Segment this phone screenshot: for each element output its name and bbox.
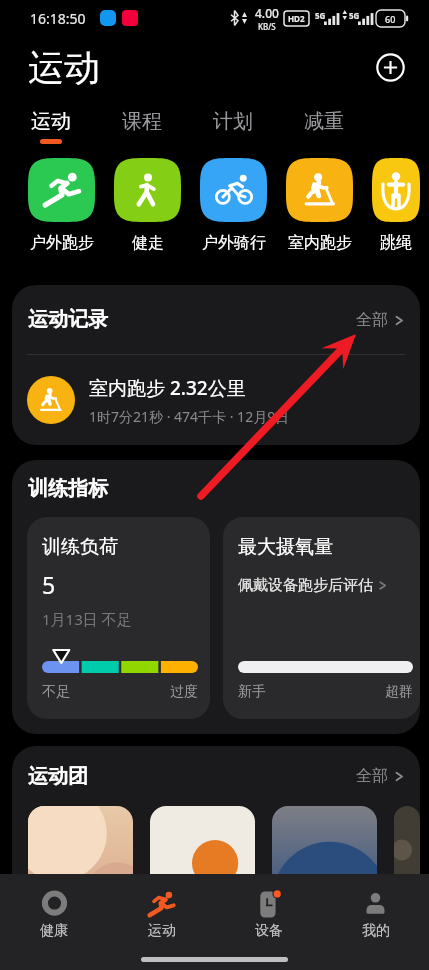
button[interactable]: 室内跑步 2.32公里 bbox=[27, 355, 405, 445]
staticText: 计划 bbox=[213, 109, 253, 134]
button[interactable]: 户外跑步 bbox=[28, 158, 95, 253]
staticText: 不足 bbox=[42, 683, 70, 701]
button[interactable]: 运动 bbox=[23, 98, 114, 145]
staticText: 过度 bbox=[170, 683, 198, 701]
staticText: 最大摄氧量 bbox=[238, 535, 333, 559]
staticText: 健康 bbox=[40, 922, 68, 940]
button[interactable]: 最大摄氧量 bbox=[223, 517, 420, 719]
staticText: 全部 bbox=[356, 766, 388, 786]
staticText: 60 bbox=[385, 13, 396, 25]
button[interactable]: 全部 bbox=[356, 306, 404, 334]
button[interactable]: 我的 bbox=[322, 874, 429, 970]
button[interactable]: 计划 bbox=[205, 98, 296, 145]
staticText: 5G bbox=[315, 10, 326, 21]
staticText: 运动 bbox=[148, 922, 176, 940]
staticText: 减重 bbox=[304, 109, 344, 134]
button[interactable]: 运动 bbox=[108, 874, 215, 970]
staticText: 课程 bbox=[122, 109, 162, 134]
staticText: 全部 bbox=[356, 310, 388, 330]
button[interactable]: 课程 bbox=[114, 98, 205, 145]
staticText: 训练指标 bbox=[28, 476, 108, 501]
staticText: 运动 bbox=[31, 109, 71, 134]
button[interactable] bbox=[272, 806, 377, 916]
button[interactable]: 室内跑步 bbox=[286, 158, 353, 253]
button[interactable] bbox=[28, 806, 133, 916]
staticText: 超群 bbox=[385, 683, 413, 701]
staticText: 室内跑步 bbox=[288, 233, 352, 253]
staticText: HD2 bbox=[288, 13, 305, 24]
button[interactable] bbox=[150, 806, 255, 916]
staticText: 设备 bbox=[255, 922, 283, 940]
button[interactable] bbox=[394, 806, 420, 916]
staticText: KB/S bbox=[258, 21, 276, 32]
staticText: 4.00 bbox=[255, 5, 279, 21]
staticText: 1时7分21秒 · 474千卡 · 12月9日 bbox=[89, 407, 290, 426]
button[interactable]: 健康 bbox=[0, 874, 108, 970]
button[interactable]: 健走 bbox=[114, 158, 181, 253]
staticText: 运动团 bbox=[28, 764, 88, 789]
button[interactable]: 跳绳 bbox=[372, 158, 420, 253]
staticText: 5G bbox=[349, 10, 360, 21]
button[interactable]: Add workout bbox=[373, 50, 407, 84]
staticText: 健走 bbox=[132, 233, 164, 253]
button[interactable]: 设备 bbox=[215, 874, 322, 970]
button[interactable]: 减重 bbox=[296, 98, 387, 145]
button[interactable]: 全部 bbox=[356, 762, 404, 790]
staticText: 新手 bbox=[238, 683, 266, 701]
button[interactable]: 训练负荷 bbox=[27, 517, 210, 719]
staticText: 16:18:50 bbox=[30, 9, 86, 28]
staticText: 跳绳 bbox=[380, 233, 412, 253]
staticText: 室内跑步 2.32公里 bbox=[89, 375, 246, 401]
button[interactable]: 户外骑行 bbox=[200, 158, 267, 253]
staticText: 佩戴设备跑步后评估 bbox=[238, 576, 373, 595]
staticText: 5 bbox=[42, 569, 56, 600]
staticText: 运动记录 bbox=[28, 307, 108, 332]
staticText: 我的 bbox=[362, 922, 390, 940]
staticText: 户外骑行 bbox=[202, 233, 266, 253]
staticText: 运动 bbox=[28, 45, 100, 90]
staticText: 训练负荷 bbox=[42, 535, 118, 559]
staticText: 1月13日 不足 bbox=[42, 609, 132, 629]
staticText: 户外跑步 bbox=[30, 233, 94, 253]
